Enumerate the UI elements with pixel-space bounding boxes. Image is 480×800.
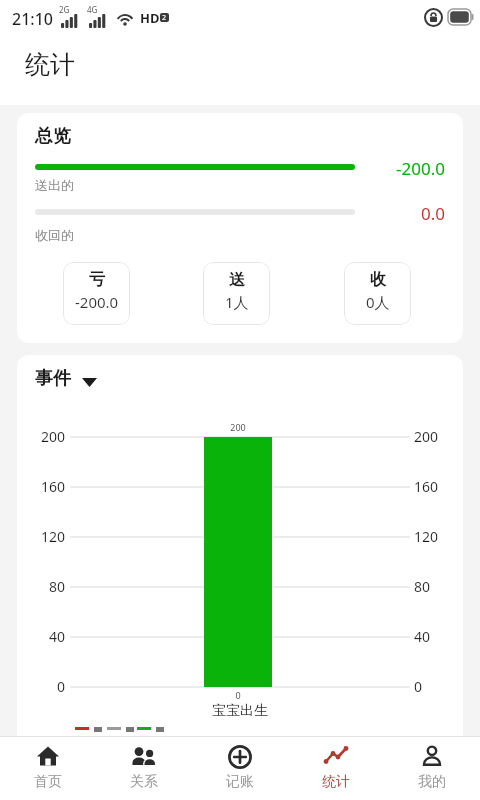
staticText: 送: [229, 270, 245, 290]
staticText: 0.0: [355, 202, 445, 225]
button[interactable]: 记账: [192, 737, 288, 800]
staticText: HD: [140, 9, 160, 27]
staticText: 我的: [418, 773, 446, 791]
staticText: 80: [25, 577, 65, 596]
staticText: 200: [204, 421, 272, 433]
staticText: 0人: [366, 292, 390, 312]
staticText: 记账: [226, 773, 254, 791]
staticText: 统计: [322, 773, 350, 791]
staticText: 统计: [25, 49, 75, 80]
button[interactable]: 亏: [63, 262, 130, 325]
staticText: 160: [414, 477, 454, 496]
staticText: 总览: [35, 125, 71, 148]
staticText: 1人: [225, 292, 249, 312]
staticText: 2G: [59, 4, 70, 15]
staticText: 40: [25, 627, 65, 646]
button[interactable]: 首页: [0, 737, 96, 800]
staticText: 送出的: [35, 177, 74, 193]
staticText: 120: [25, 527, 65, 546]
staticText: 关系: [130, 773, 158, 791]
staticText: 160: [25, 477, 65, 496]
staticText: 0: [414, 677, 454, 696]
staticText: 收: [370, 270, 386, 290]
staticText: -200.0: [75, 292, 119, 312]
staticText: 200: [414, 427, 454, 446]
staticText: 首页: [34, 773, 62, 791]
staticText: 80: [414, 577, 454, 596]
staticText: 0: [25, 677, 65, 696]
staticText: 收回的: [35, 227, 74, 243]
staticText: 40: [414, 627, 454, 646]
staticText: 事件: [35, 367, 71, 390]
button[interactable]: 我的: [384, 737, 480, 800]
button[interactable]: 送: [203, 262, 270, 325]
staticText: 200: [25, 427, 65, 446]
staticText: 0: [204, 689, 272, 701]
button[interactable]: 关系: [96, 737, 192, 800]
staticText: 宝宝出生: [180, 702, 300, 720]
button[interactable]: 统计: [288, 737, 384, 800]
button[interactable]: 事件: [35, 367, 117, 393]
staticText: 120: [414, 527, 454, 546]
staticText: 21:10: [12, 8, 53, 30]
staticText: -200.0: [355, 157, 445, 180]
button[interactable]: 收: [344, 262, 411, 325]
staticText: 4G: [87, 4, 98, 15]
staticText: 2: [162, 13, 167, 22]
staticText: 亏: [89, 270, 105, 290]
